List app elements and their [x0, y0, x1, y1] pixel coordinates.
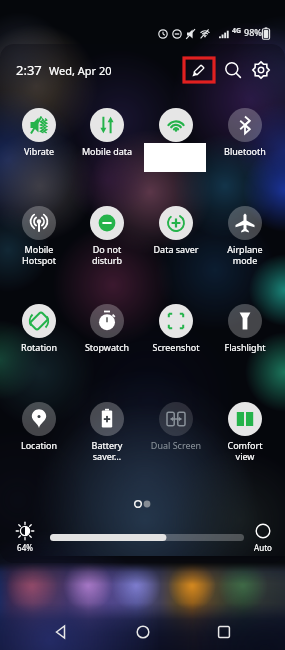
button[interactable]: Home	[123, 614, 163, 650]
button[interactable]: Battery saver…	[73, 402, 141, 464]
staticText: Comfort view	[211, 439, 279, 463]
staticText: Dual Screen	[142, 439, 210, 451]
staticText: 4G	[232, 26, 242, 36]
staticText: Auto	[252, 542, 274, 553]
button[interactable]: Wi-Fi	[142, 108, 210, 170]
staticText: Bluetooth	[211, 145, 279, 157]
staticText: Do not disturb	[73, 243, 141, 267]
button[interactable]: Search	[221, 58, 245, 82]
staticText: Battery saver…	[73, 439, 141, 463]
staticText: Vibrate	[5, 145, 73, 157]
button[interactable]: Vibrate	[5, 108, 73, 170]
button[interactable]: Comfort view	[211, 402, 279, 464]
button[interactable]: Settings	[249, 58, 273, 82]
staticText: Flashlight	[211, 341, 279, 353]
button[interactable]: Mobile Hotspot	[5, 206, 73, 268]
staticText: Airplane mode	[211, 243, 279, 267]
staticText: Rotation	[5, 341, 73, 353]
button[interactable]: Edit	[183, 57, 215, 83]
button[interactable]: Back	[41, 614, 81, 650]
button[interactable]: Flashlight	[211, 304, 279, 366]
staticText: 64%	[14, 542, 36, 553]
button[interactable]: Screenshot	[142, 304, 210, 366]
button[interactable]: Bluetooth	[211, 108, 279, 170]
staticText: Screenshot	[142, 341, 210, 353]
staticText: Data saver	[142, 243, 210, 255]
button[interactable]: Recents	[204, 614, 244, 650]
button[interactable]: Data saver	[142, 206, 210, 268]
staticText: Mobile Hotspot	[5, 243, 73, 267]
button[interactable]: Mobile data	[73, 108, 141, 170]
staticText: Wed, Apr 20	[49, 63, 112, 78]
staticText: Stopwatch	[73, 341, 141, 353]
button[interactable]: Location	[5, 402, 73, 464]
button[interactable]: Stopwatch	[73, 304, 141, 366]
button[interactable]: Dual Screen	[142, 402, 210, 464]
button[interactable]: Rotation	[5, 304, 73, 366]
button[interactable]: Do not disturb	[73, 206, 141, 268]
button[interactable]: Airplane mode	[211, 206, 279, 268]
staticText: Location	[5, 439, 73, 451]
staticText: 2:37	[16, 61, 42, 79]
staticText: 98%	[244, 26, 262, 38]
staticText: Mobile data	[73, 145, 141, 157]
